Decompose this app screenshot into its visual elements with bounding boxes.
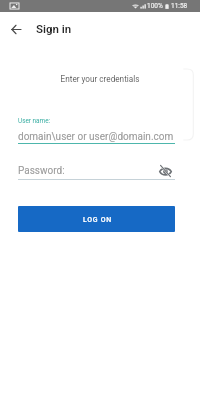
staticText: LOG ON [83,216,112,224]
button[interactable]: LOG ON [18,206,175,232]
staticText: domain\user or user@domain.com [18,131,174,143]
button[interactable]: Back [0,13,32,43]
staticText: User name: [18,117,51,125]
button[interactable]: Show password [155,162,175,180]
staticText: Password: [18,165,65,177]
staticText: Sign in [36,22,72,35]
staticText: 100% [147,2,163,10]
staticText: 11:58 [171,2,188,10]
staticText: Enter your credentials [0,74,200,84]
